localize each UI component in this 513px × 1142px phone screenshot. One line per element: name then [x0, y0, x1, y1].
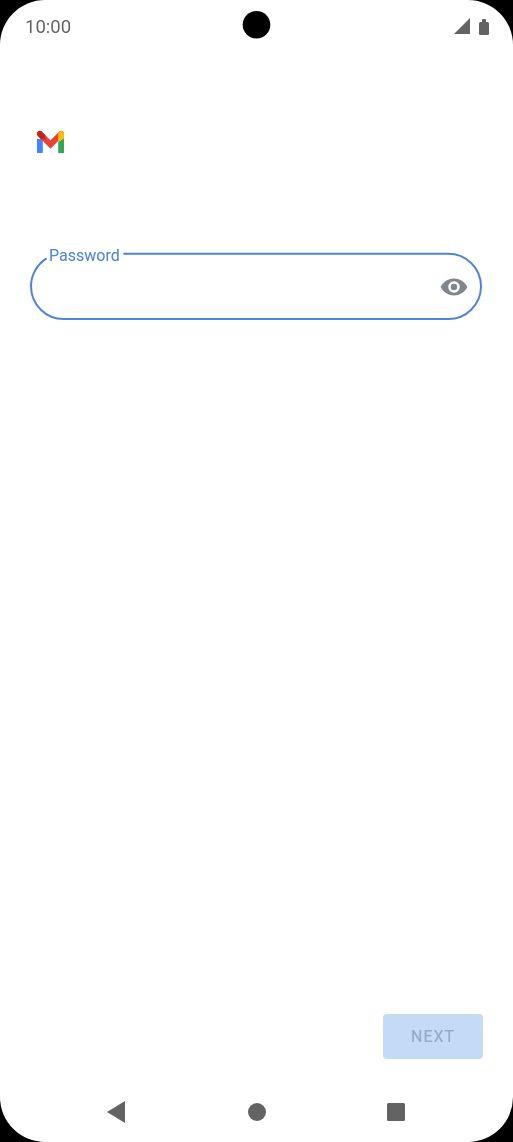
button[interactable]: Show password [433, 266, 474, 307]
button[interactable]: Home [227, 1082, 287, 1142]
button[interactable]: Recent apps [366, 1082, 426, 1142]
button[interactable]: Back [86, 1082, 146, 1142]
button[interactable]: Password [30, 252, 482, 320]
staticText: Password [49, 246, 120, 265]
staticText: NEXT [411, 1027, 456, 1046]
staticText: 10:00 [25, 16, 72, 38]
button[interactable]: NEXT [383, 1014, 483, 1059]
